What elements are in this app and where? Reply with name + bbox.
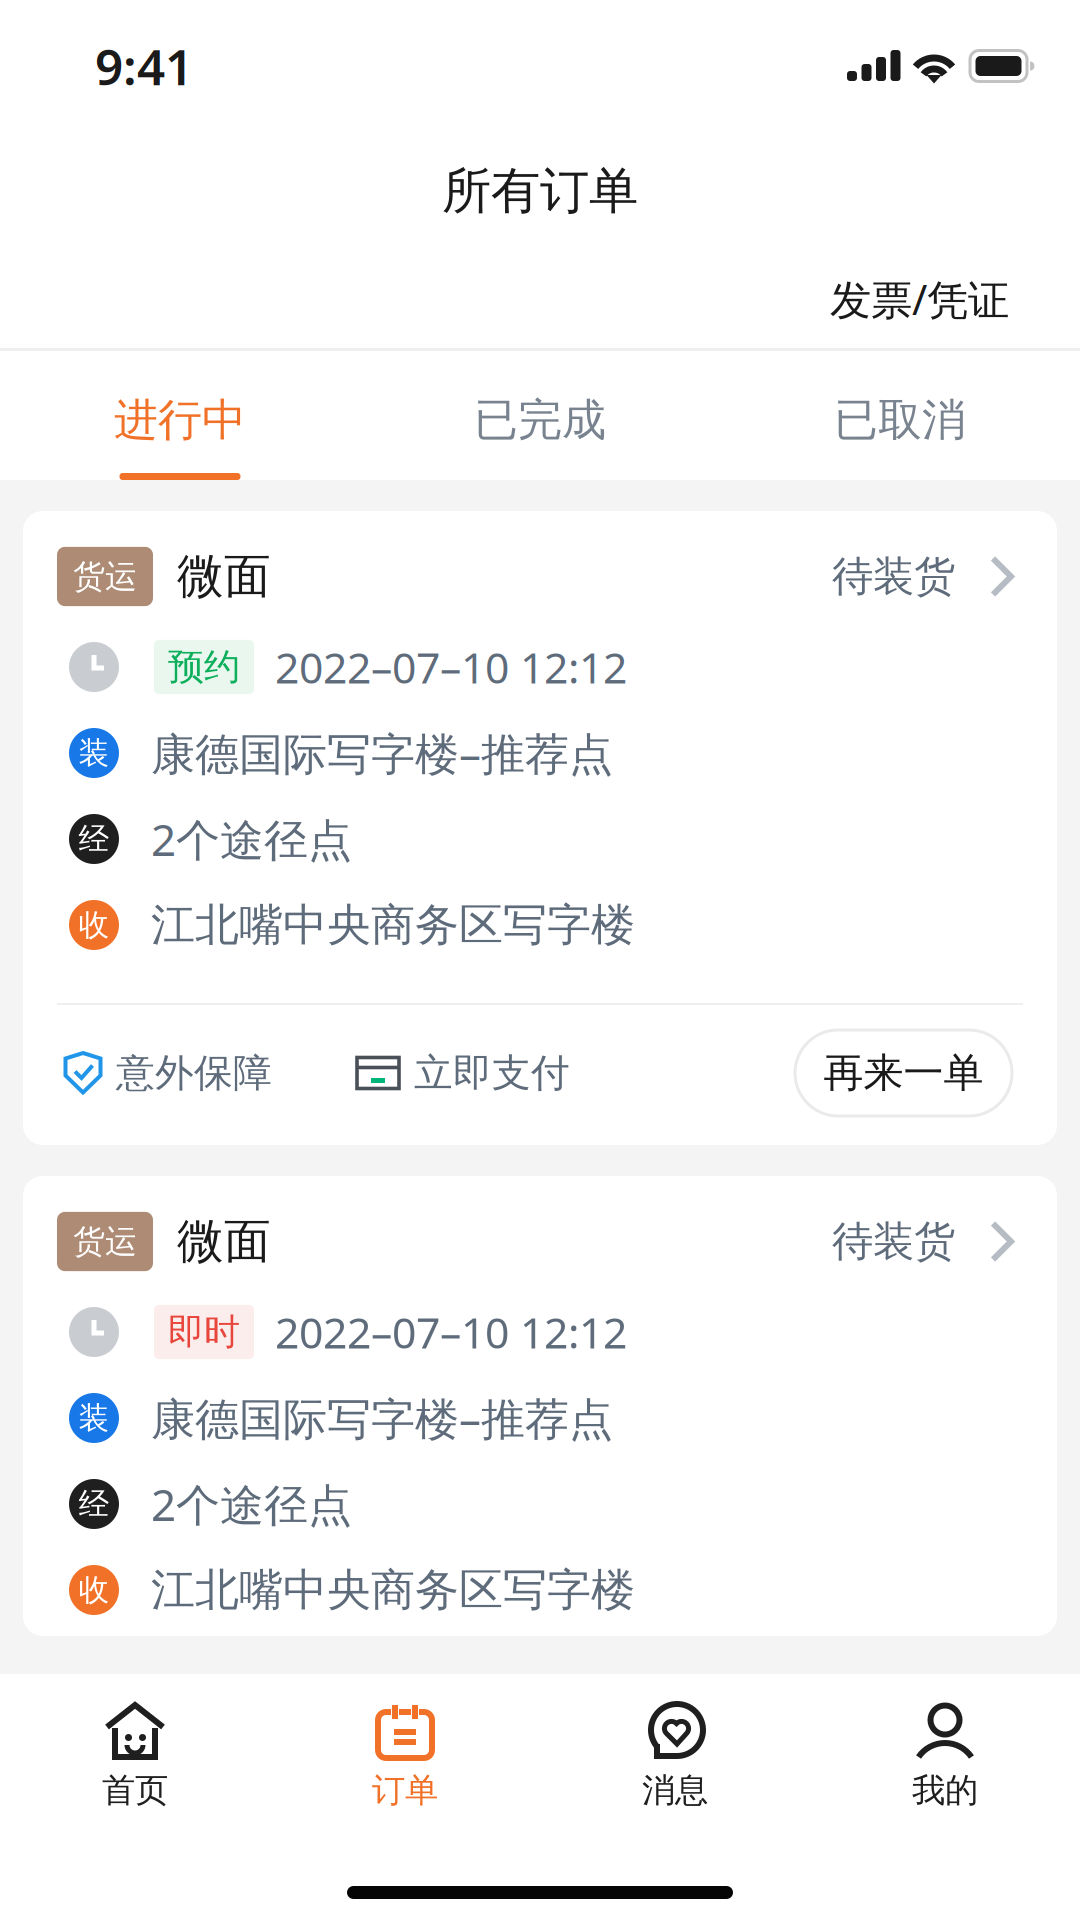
staticText: 立即支付	[414, 1714, 570, 1762]
staticText: 意外保障	[116, 1049, 272, 1097]
button[interactable]: 消息	[540, 1674, 810, 1830]
button[interactable]: 再来一单	[795, 1695, 1023, 1781]
button[interactable]: 首页	[0, 1674, 270, 1830]
staticText: 首页	[102, 1770, 168, 1811]
staticText: 江北嘴中央商务区写字楼	[151, 1563, 635, 1617]
staticText: 预约	[168, 645, 240, 689]
staticText: 货运	[73, 557, 137, 596]
button[interactable]: 货运	[57, 529, 1023, 624]
staticText: 收	[78, 1571, 109, 1609]
staticText: 装	[78, 1399, 109, 1437]
button[interactable]: 货运	[57, 1194, 1023, 1289]
staticText: 经	[78, 820, 109, 858]
staticText: 2个途径点	[151, 1475, 352, 1533]
staticText: 消息	[642, 1770, 708, 1811]
staticText: 康德国际写字楼–推荐点	[151, 724, 613, 782]
staticText: 2022–07–10 12:12	[275, 1304, 627, 1360]
staticText: 发票/凭证	[830, 272, 1009, 326]
staticText: 9:41	[95, 33, 193, 99]
staticText: 货运	[73, 1222, 137, 1261]
staticText: 订单	[372, 1770, 438, 1811]
staticText: 微面	[177, 1213, 271, 1270]
staticText: 江北嘴中央商务区写字楼	[151, 898, 635, 952]
staticText: 收	[78, 906, 109, 944]
staticText: 立即支付	[414, 1049, 570, 1097]
staticText: 待装货	[832, 551, 955, 602]
staticText: 2个途径点	[151, 810, 352, 868]
button[interactable]: 已完成	[360, 351, 720, 480]
button[interactable]: 发票/凭证	[0, 250, 1080, 348]
staticText: 待装货	[832, 1216, 955, 1267]
staticText: 意外保障	[116, 1714, 272, 1762]
staticText: 装	[78, 734, 109, 772]
staticText: 已完成	[474, 393, 606, 447]
button[interactable]: 进行中	[0, 351, 360, 480]
button[interactable]: 已取消	[720, 351, 1080, 480]
staticText: 微面	[177, 548, 271, 605]
button[interactable]: 我的	[810, 1674, 1080, 1830]
staticText: 康德国际写字楼–推荐点	[151, 1389, 613, 1447]
staticText: 即时	[168, 1310, 240, 1354]
staticText: 经	[78, 1485, 109, 1523]
staticText: 所有订单	[442, 161, 638, 221]
staticText: 再来一单	[823, 1713, 983, 1762]
button[interactable]: 再来一单	[795, 1030, 1023, 1116]
staticText: 再来一单	[823, 1048, 983, 1097]
staticText: 我的	[912, 1770, 978, 1811]
staticText: 2022–07–10 12:12	[275, 639, 627, 695]
staticText: 已取消	[834, 393, 966, 447]
staticText: 进行中	[114, 393, 246, 447]
button[interactable]: 订单	[270, 1674, 540, 1830]
